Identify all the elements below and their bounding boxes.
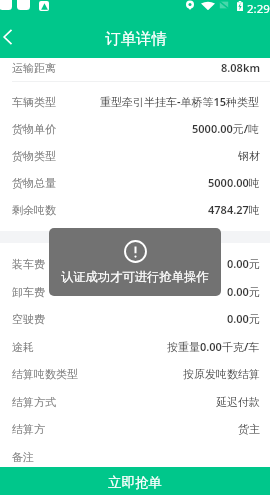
button[interactable]: 备注 xyxy=(0,443,270,470)
button[interactable]: 途耗 xyxy=(0,333,270,360)
button[interactable]: 装车费 xyxy=(0,250,270,277)
staticText: 结算方式 xyxy=(12,395,56,409)
staticText: 运输距离 xyxy=(12,61,56,75)
staticText: 途耗 xyxy=(12,340,34,354)
button[interactable]: 卸车费 xyxy=(0,278,270,305)
button[interactable]: 货物类型 xyxy=(0,142,270,169)
staticText: 货物类型 xyxy=(12,149,56,163)
staticText: 备注 xyxy=(12,450,34,464)
staticText: 0.00元 xyxy=(227,256,260,271)
button[interactable]: 车辆类型 xyxy=(0,88,270,115)
button[interactable]: 剩余吨数 xyxy=(0,196,270,223)
staticText: 5000.00吨 xyxy=(208,175,260,190)
button[interactable]: 结算方 xyxy=(0,415,270,442)
staticText: 货物总量 xyxy=(12,176,56,190)
button[interactable]: 结算方式 xyxy=(0,388,270,415)
staticText: 空驶费 xyxy=(12,312,45,326)
staticText: 车辆类型 xyxy=(12,95,56,109)
staticText: 订单详情 xyxy=(105,29,167,49)
button[interactable]: 运输距离 xyxy=(0,54,270,81)
staticText: 立即抢单 xyxy=(108,474,162,491)
staticText: 8.08km xyxy=(221,60,260,75)
staticText: 0.00元 xyxy=(227,284,260,299)
button[interactable]: 空驶费 xyxy=(0,305,270,332)
staticText: 0.00元 xyxy=(227,311,260,326)
staticText: 按重量0.00千克/车 xyxy=(167,339,260,354)
button[interactable]: 货物总量 xyxy=(0,169,270,196)
staticText: 5000.00元/吨 xyxy=(192,121,260,136)
staticText: 剩余吨数 xyxy=(12,203,56,217)
staticText: 结算方 xyxy=(12,422,45,436)
staticText: 装车费 xyxy=(12,257,45,271)
staticText: 重型牵引半挂车-单桥等15种类型 xyxy=(100,94,260,109)
staticText: 2:29 xyxy=(247,1,270,15)
staticText: 钢材 xyxy=(238,149,260,163)
staticText: 货物单价 xyxy=(12,122,56,136)
button[interactable]: 结算吨数类型 xyxy=(0,360,270,387)
button[interactable]: 立即抢单 xyxy=(0,467,270,495)
staticText: 4784.27吨 xyxy=(208,202,260,217)
staticText: 按原发吨数结算 xyxy=(183,367,260,381)
staticText: 卸车费 xyxy=(12,285,45,299)
staticText: 货主 xyxy=(238,422,260,436)
staticText: 结算吨数类型 xyxy=(12,367,78,381)
button[interactable]: 货物单价 xyxy=(0,115,270,142)
staticText: 认证成功才可进行抢单操作 xyxy=(61,269,209,284)
staticText: 延迟付款 xyxy=(216,395,260,409)
button[interactable]: Back xyxy=(0,21,32,53)
